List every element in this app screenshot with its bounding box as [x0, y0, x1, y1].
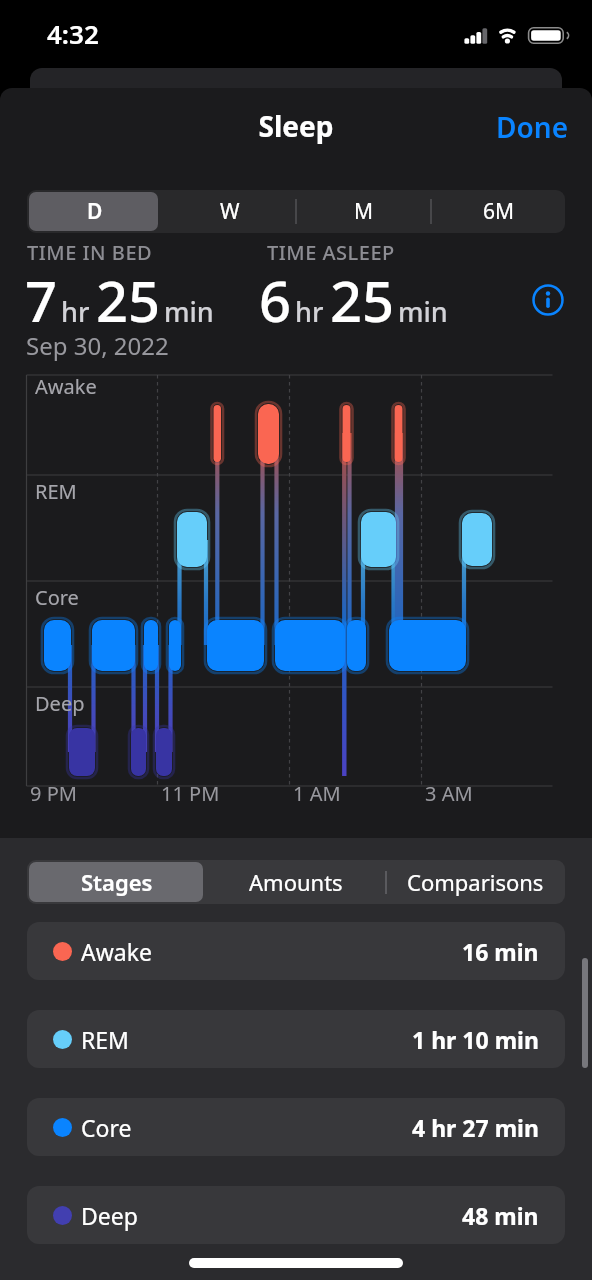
staticText: Core [81, 1112, 132, 1143]
staticText: Awake [81, 936, 152, 967]
staticText: TIME IN BED [27, 239, 153, 266]
staticText: min [398, 293, 448, 330]
staticText: 48 min [462, 1200, 539, 1231]
button[interactable]: Amounts [206, 860, 385, 904]
staticText: 4:32 [47, 16, 99, 51]
button[interactable]: D [27, 190, 162, 233]
button[interactable]: Awake [27, 922, 565, 980]
button[interactable]: Core [27, 1098, 565, 1156]
staticText: 1 AM [293, 780, 341, 807]
staticText: W [220, 197, 240, 226]
staticText: 25 [330, 262, 395, 338]
staticText: Deep [35, 690, 85, 717]
staticText: REM [35, 478, 77, 505]
button[interactable]: 6M [431, 190, 566, 233]
staticText: Sleep [0, 107, 592, 145]
staticText: M [354, 197, 374, 226]
button[interactable]: M [296, 190, 431, 233]
staticText: 25 [96, 262, 161, 338]
staticText: 9 PM [30, 780, 77, 807]
staticText: hr [295, 293, 324, 330]
button[interactable]: REM [27, 1010, 565, 1068]
staticText: min [164, 293, 214, 330]
staticText: Amounts [249, 867, 343, 897]
staticText: Sep 30, 2022 [26, 329, 169, 362]
staticText: D [87, 197, 103, 226]
button[interactable]: Comparisons [386, 860, 565, 904]
button[interactable]: W [162, 190, 297, 233]
staticText: Core [35, 584, 79, 611]
staticText: 4 hr 27 min [412, 1112, 539, 1143]
staticText: Deep [81, 1200, 138, 1231]
staticText: Awake [35, 373, 97, 400]
staticText: 16 min [462, 936, 539, 967]
staticText: 7 [25, 262, 58, 338]
staticText: TIME ASLEEP [267, 239, 395, 266]
staticText: Comparisons [407, 867, 544, 897]
staticText: REM [81, 1024, 129, 1055]
button[interactable]: Stages [27, 860, 206, 904]
staticText: Done [496, 108, 569, 146]
staticText: 1 hr 10 min [412, 1024, 539, 1055]
staticText: 11 PM [161, 780, 220, 807]
staticText: Stages [81, 867, 153, 897]
staticText: 6M [483, 197, 515, 226]
button[interactable] [532, 284, 564, 316]
button[interactable]: Deep [27, 1186, 565, 1244]
staticText: 6 [259, 262, 292, 338]
button[interactable]: Done [490, 102, 575, 152]
staticText: 3 AM [425, 780, 473, 807]
staticText: hr [61, 293, 90, 330]
